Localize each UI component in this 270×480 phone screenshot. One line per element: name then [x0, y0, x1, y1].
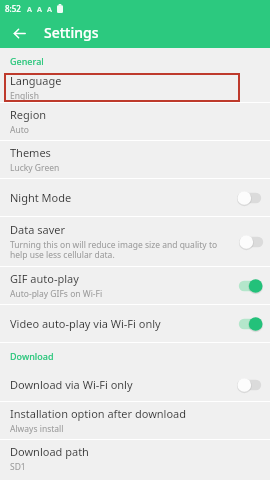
staticText: GIF auto-play: [10, 271, 79, 286]
staticText: Themes: [10, 145, 51, 160]
staticText: Video auto-play via Wi-Fi only: [10, 316, 161, 331]
staticText: Night Mode: [10, 190, 72, 205]
staticText: Auto-play GIFs on Wi-Fi: [10, 288, 103, 300]
staticText: A: [37, 4, 42, 14]
staticText: Download path: [10, 444, 89, 459]
staticText: Always install: [10, 423, 64, 435]
button[interactable]: Installation option after download: [0, 402, 270, 439]
staticText: 8:52: [5, 3, 21, 14]
button[interactable]: Switch off: [236, 189, 264, 207]
staticText: Language: [10, 73, 62, 88]
staticText: Region: [10, 107, 47, 122]
staticText: Download: [10, 350, 54, 362]
staticText: Settings: [44, 23, 99, 42]
staticText: English: [10, 90, 39, 102]
button[interactable]: Language: [0, 73, 270, 102]
staticText: Lucky Green: [10, 162, 60, 174]
staticText: Data saver: [10, 222, 65, 237]
button[interactable]: Themes: [0, 141, 270, 178]
button[interactable]: Switch off: [238, 233, 266, 251]
staticText: Download via Wi-Fi only: [10, 377, 133, 392]
staticText: A: [47, 4, 52, 14]
button[interactable]: Video auto-play via Wi-Fi only: [0, 305, 270, 342]
staticText: SD1: [10, 461, 26, 473]
button[interactable]: Switch off: [236, 376, 264, 394]
button[interactable]: Data saver: [0, 217, 270, 266]
staticText: Turning this on will reduce image size a…: [10, 239, 236, 261]
staticText: Installation option after download: [10, 406, 187, 421]
staticText: Auto: [10, 124, 29, 136]
button[interactable]: GIF auto-play: [0, 267, 270, 304]
staticText: General: [10, 55, 44, 67]
button[interactable]: Back: [7, 21, 31, 45]
button[interactable]: Download path: [0, 440, 270, 477]
button[interactable]: Night Mode: [0, 179, 270, 216]
button[interactable]: Switch on: [236, 277, 264, 295]
staticText: A: [27, 4, 32, 14]
button[interactable]: Switch on: [236, 315, 264, 333]
button[interactable]: Download via Wi-Fi only: [0, 368, 270, 401]
button[interactable]: Region: [0, 103, 270, 140]
